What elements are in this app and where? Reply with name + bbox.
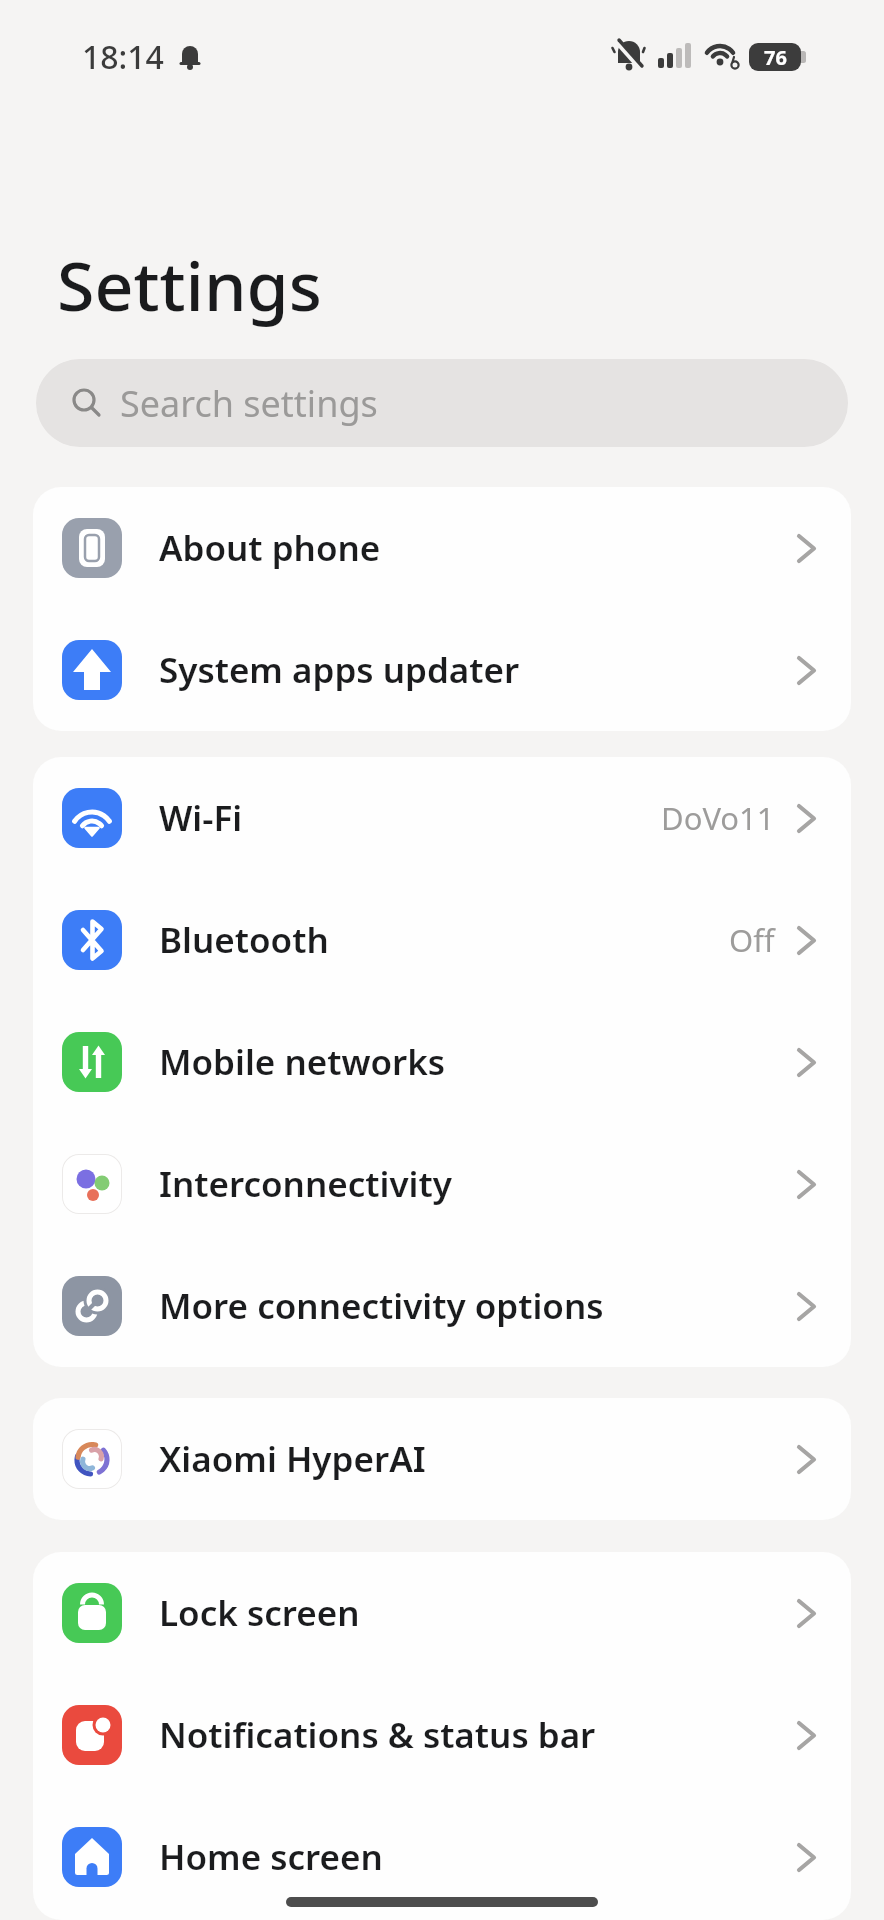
- button[interactable]: Interconnectivity: [33, 1123, 851, 1245]
- staticText: Search settings: [120, 379, 378, 428]
- button[interactable]: System apps updater: [33, 609, 851, 731]
- staticText: System apps updater: [159, 646, 520, 694]
- staticText: More connectivity options: [159, 1282, 604, 1330]
- staticText: About phone: [159, 524, 381, 572]
- staticText: Settings: [57, 238, 322, 331]
- staticText: 76: [764, 44, 787, 71]
- staticText: Home screen: [159, 1833, 383, 1881]
- staticText: 18:14: [82, 35, 164, 79]
- staticText: Off: [729, 919, 775, 961]
- button[interactable]: About phone: [33, 487, 851, 609]
- button[interactable]: Home screen: [33, 1796, 851, 1918]
- staticText: Interconnectivity: [159, 1160, 452, 1208]
- button[interactable]: Search settings: [36, 359, 848, 447]
- staticText: Lock screen: [159, 1589, 360, 1637]
- staticText: DoVo11: [661, 797, 775, 839]
- staticText: Notifications & status bar: [159, 1711, 596, 1759]
- button[interactable]: Xiaomi HyperAI: [33, 1398, 851, 1520]
- staticText: Mobile networks: [159, 1038, 446, 1086]
- button[interactable]: Bluetooth: [33, 879, 851, 1001]
- button[interactable]: Notifications & status bar: [33, 1674, 851, 1796]
- button[interactable]: Wi-Fi: [33, 757, 851, 879]
- staticText: Wi-Fi: [159, 794, 243, 842]
- staticText: Bluetooth: [159, 916, 329, 964]
- button[interactable]: Lock screen: [33, 1552, 851, 1674]
- button[interactable]: Mobile networks: [33, 1001, 851, 1123]
- button[interactable]: More connectivity options: [33, 1245, 851, 1367]
- staticText: Xiaomi HyperAI: [159, 1435, 426, 1483]
